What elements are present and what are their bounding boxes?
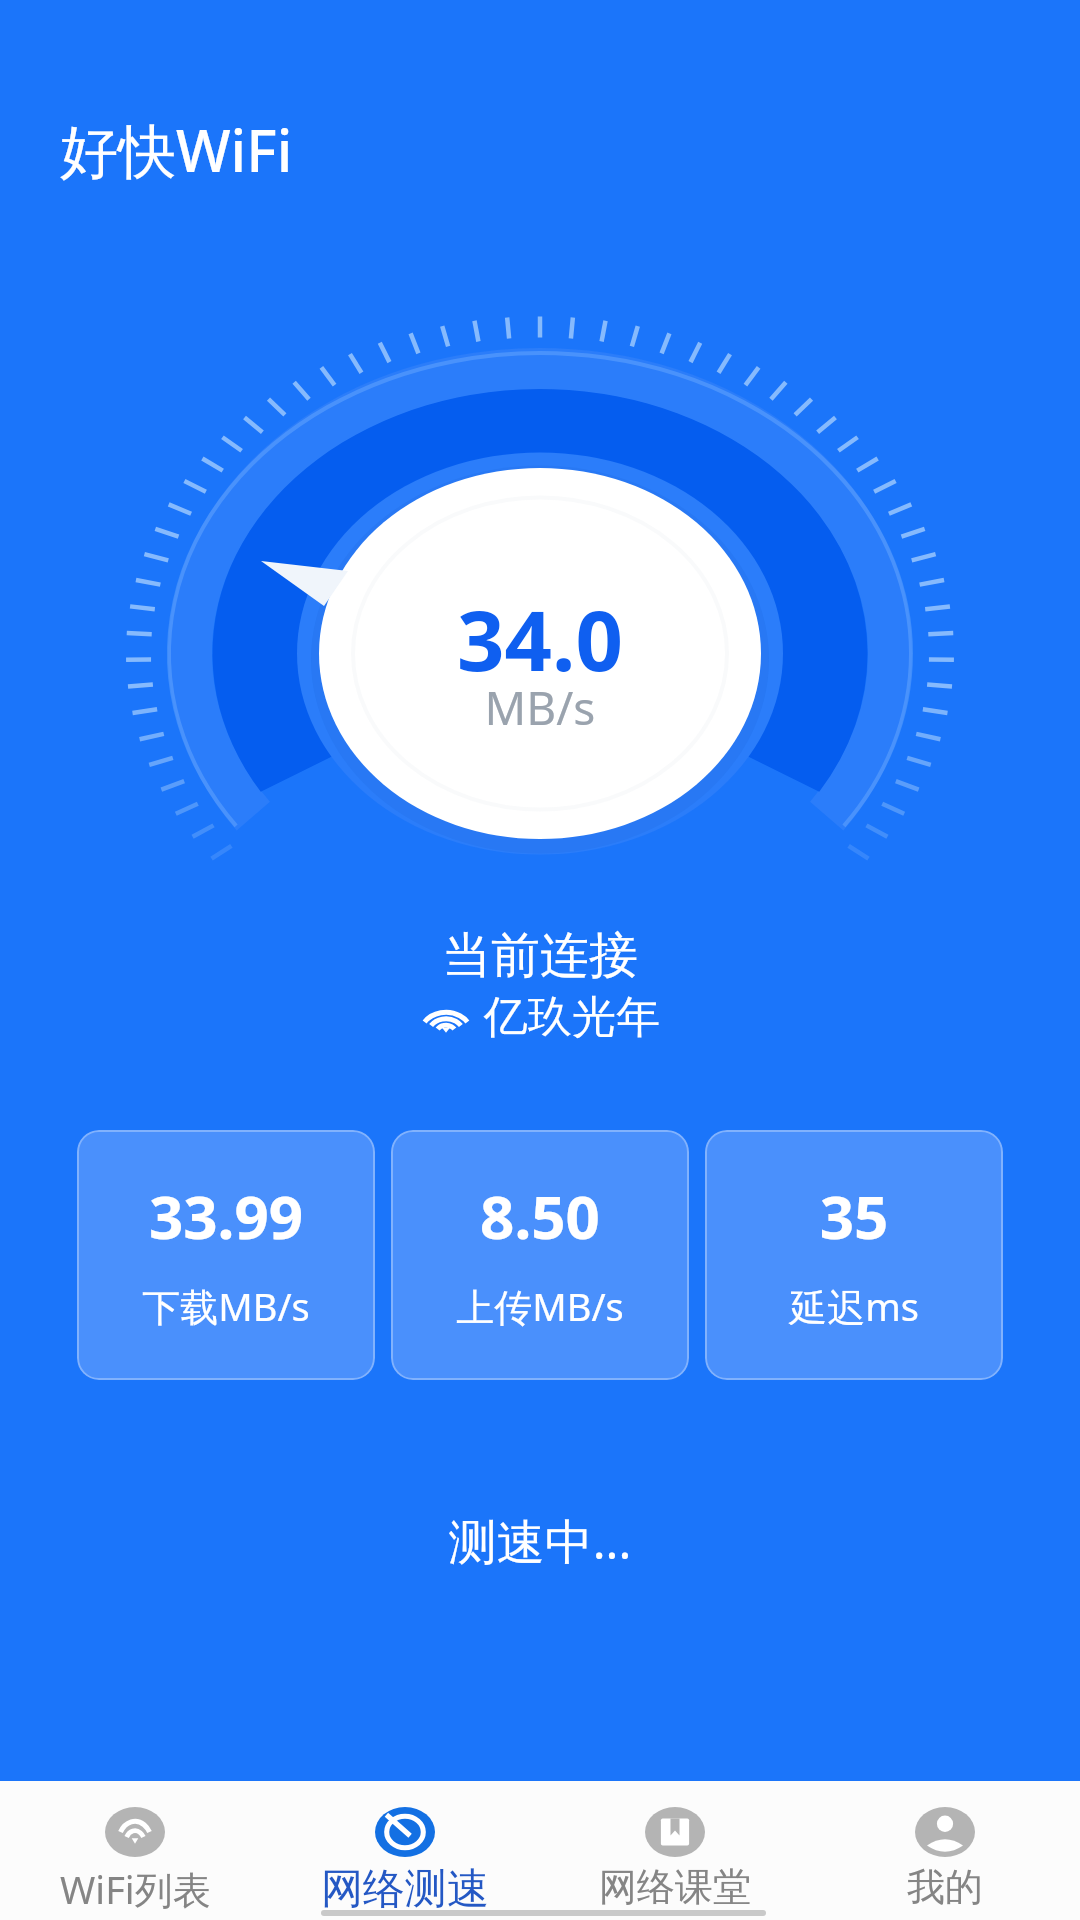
button[interactable]: Courses [540,1781,810,1920]
staticText: 8.50 [391,1175,689,1257]
staticText: 当前连接 [0,925,1080,987]
staticText: 网络课堂 [599,1863,751,1911]
button[interactable]: 8.50 [391,1130,689,1380]
staticText: 好快WiFi [60,110,293,189]
other: Mine [915,1807,975,1857]
staticText: MB/s [0,676,1080,739]
staticText: 34.0 [0,582,1080,695]
other: Speed test [375,1807,435,1857]
staticText: 33.99 [77,1175,375,1257]
other: Courses [645,1807,705,1857]
staticText: 下载MB/s [77,1280,375,1332]
staticText: 延迟ms [705,1280,1003,1332]
button[interactable]: 35 [705,1130,1003,1380]
staticText: 测速中... [0,1508,1080,1574]
staticText: 我的 [907,1863,983,1911]
other: WiFi list [105,1807,165,1857]
staticText: 上传MB/s [391,1280,689,1332]
button[interactable]: 33.99 [77,1130,375,1380]
staticText: 35 [705,1175,1003,1257]
staticText: 网络测速 [321,1863,489,1916]
staticText: WiFi列表 [60,1863,211,1915]
staticText: 亿玖光年 [484,990,660,1045]
button[interactable]: Speed test [270,1781,540,1920]
button[interactable]: Mine [810,1781,1080,1920]
button[interactable]: WiFi list [0,1781,270,1920]
